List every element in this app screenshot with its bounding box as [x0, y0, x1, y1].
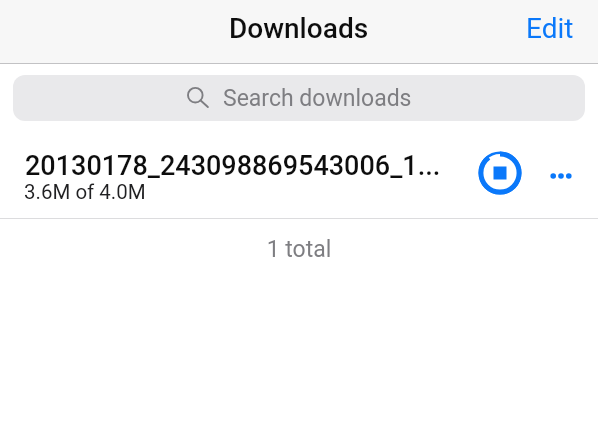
- button[interactable]: [0, 121, 598, 218]
- staticText: Edit: [526, 12, 574, 45]
- staticText: Downloads: [229, 12, 369, 45]
- button[interactable]: Pause download: [474, 147, 526, 199]
- staticText: Search downloads: [223, 85, 412, 112]
- staticText: 1 total: [0, 236, 598, 263]
- button[interactable]: More options: [538, 153, 584, 199]
- staticText: 3.6M of 4.0M: [24, 180, 146, 204]
- button[interactable]: Edit: [504, 0, 598, 55]
- button[interactable]: Search downloads: [13, 75, 585, 121]
- staticText: 20130178_243098869543006_1...: [25, 150, 445, 182]
